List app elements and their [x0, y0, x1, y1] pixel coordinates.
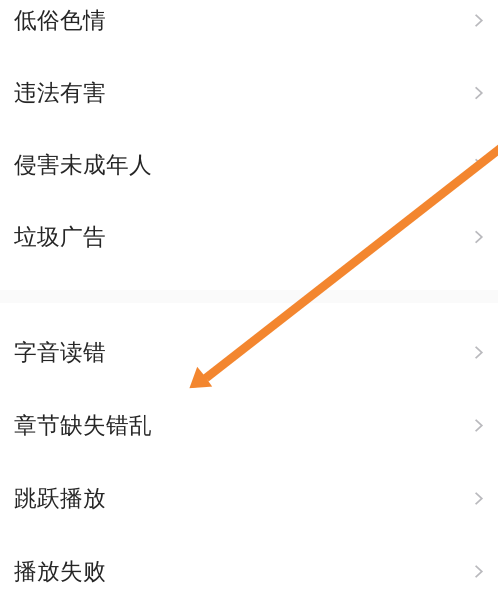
button[interactable]: 章节缺失错乱 [0, 389, 498, 462]
button[interactable]: 跳跃播放 [0, 462, 498, 535]
staticText: 字音读错 [14, 339, 106, 366]
staticText: 播放失败 [14, 558, 106, 585]
staticText: 跳跃播放 [14, 485, 106, 512]
button[interactable]: 播放失败 [0, 535, 498, 594]
staticText: 低俗色情 [14, 7, 106, 34]
staticText: 垃圾广告 [14, 223, 106, 251]
button[interactable]: 侵害未成年人 [0, 129, 498, 201]
staticText: 章节缺失错乱 [14, 412, 152, 439]
staticText: 侵害未成年人 [14, 151, 152, 179]
staticText: 违法有害 [14, 79, 106, 107]
button[interactable]: 违法有害 [0, 57, 498, 129]
button[interactable]: 字音读错 [0, 316, 498, 389]
button[interactable]: 垃圾广告 [0, 201, 498, 273]
button[interactable]: 低俗色情 [0, 0, 498, 57]
